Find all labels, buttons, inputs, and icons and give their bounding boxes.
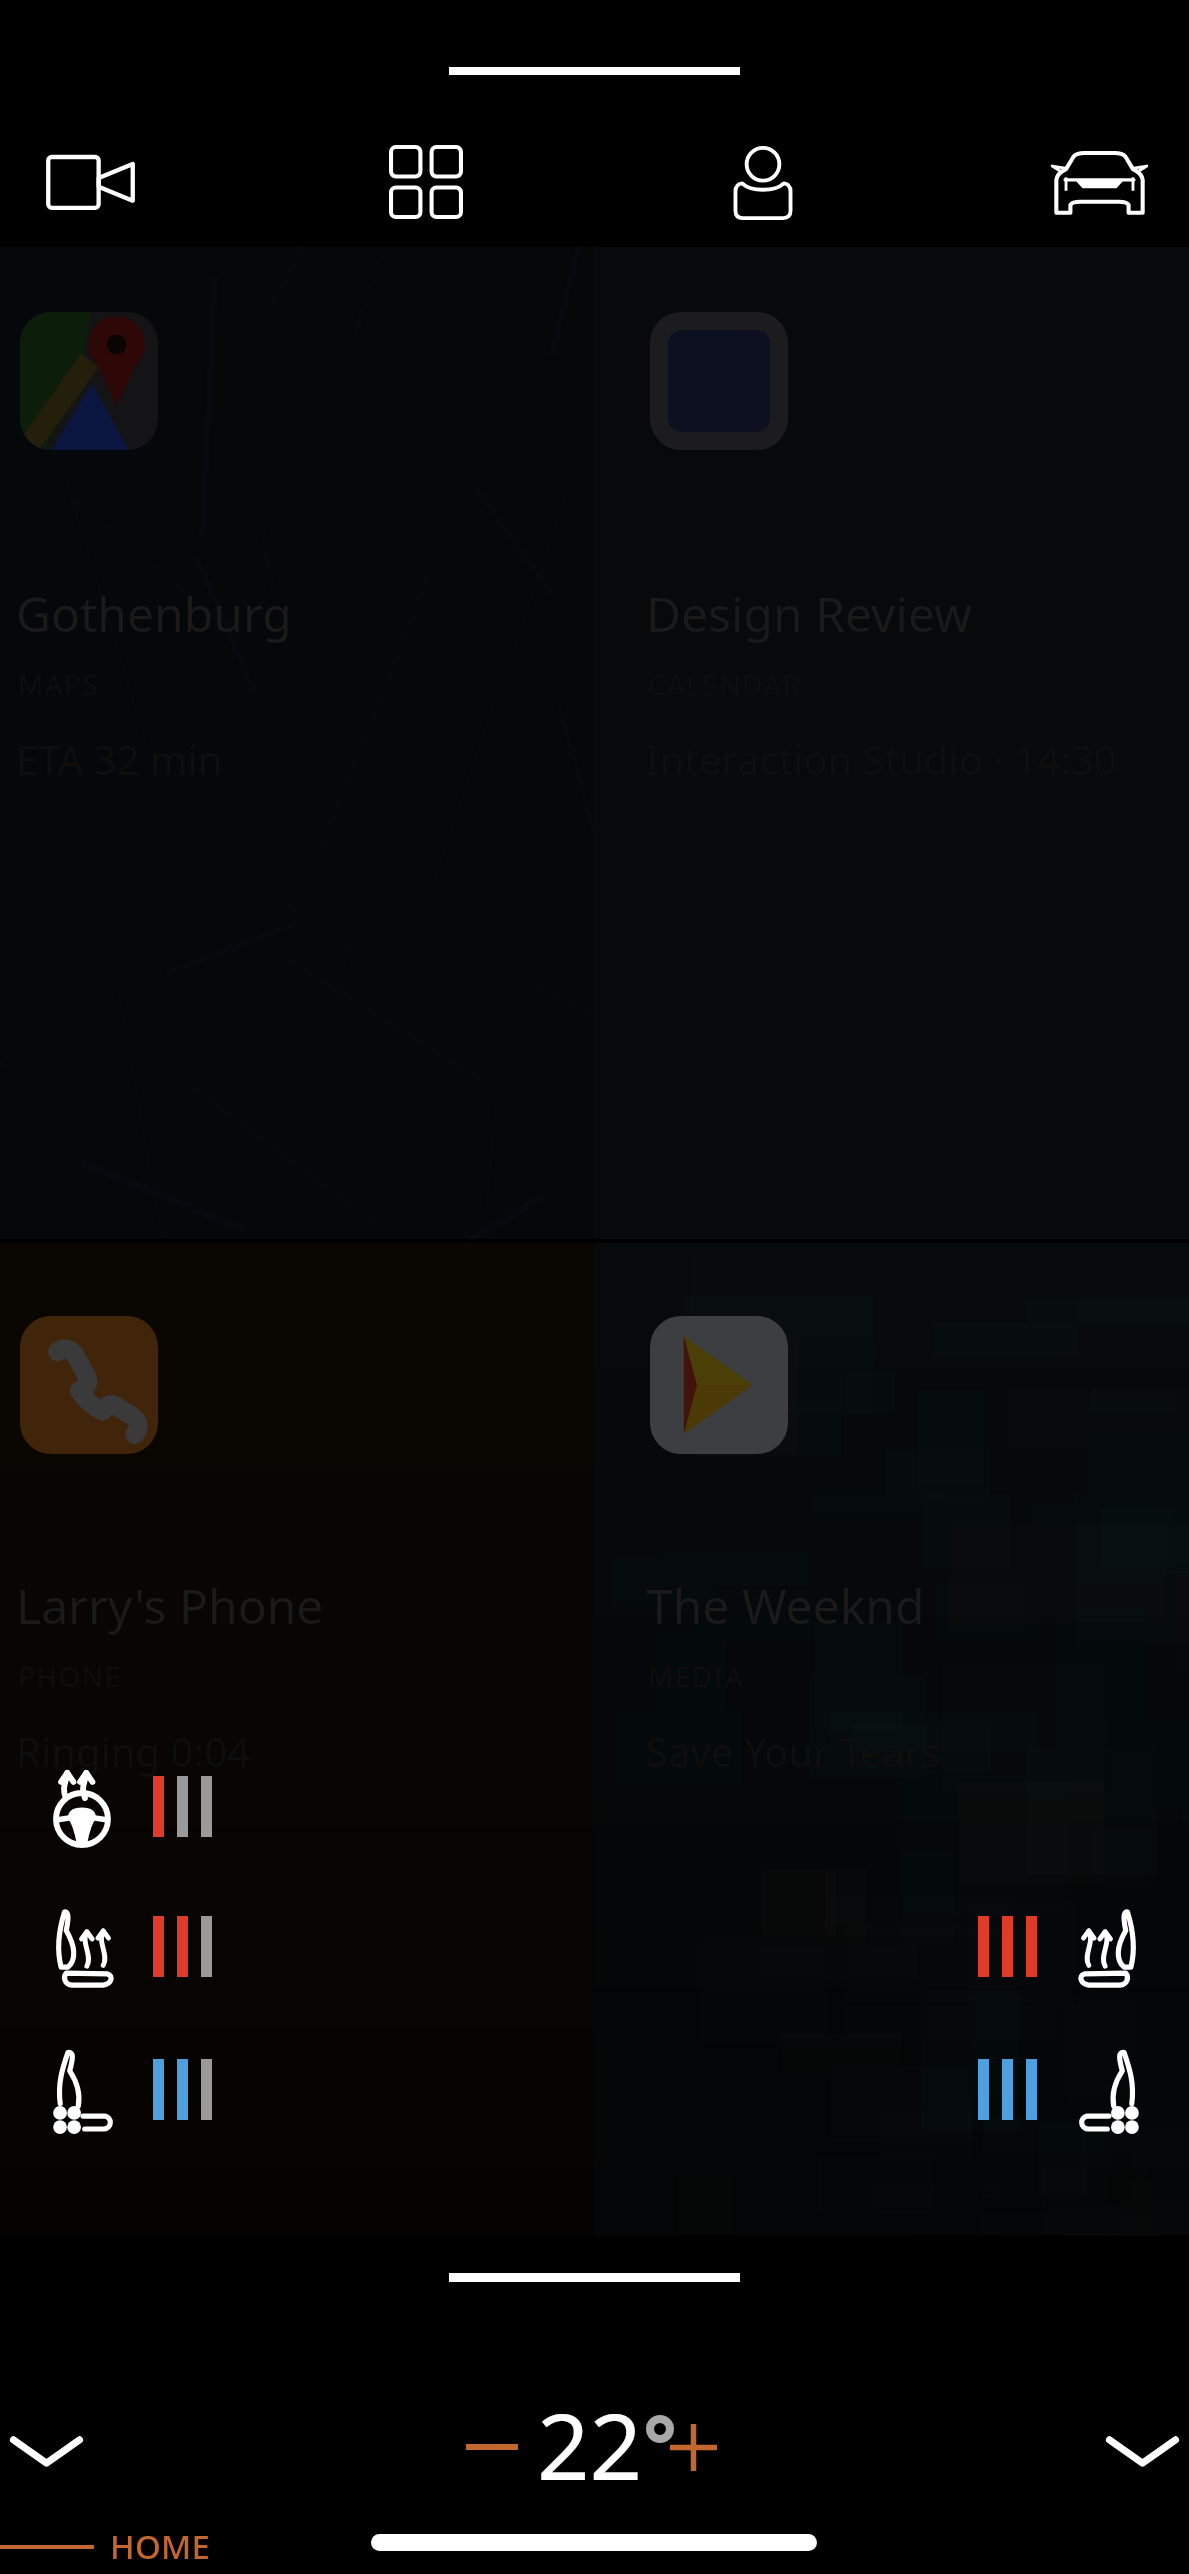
button[interactable]: Driver seat heater (30, 1888, 225, 2004)
staticText: Larry's Phone (16, 1573, 324, 1638)
button[interactable] (0, 247, 594, 1239)
staticText: PHONE (18, 1657, 122, 1695)
staticText: MEDIA (648, 1657, 744, 1695)
staticText: HOME (110, 2524, 211, 2569)
staticText: 22 (537, 2382, 643, 2507)
button[interactable]: Driver climate (0, 2381, 116, 2521)
button[interactable]: Increase temperature (638, 2392, 748, 2502)
button[interactable]: Steering wheel heater (30, 1748, 225, 1864)
button[interactable]: All apps (356, 112, 496, 252)
staticText: The Weeknd (646, 1573, 925, 1638)
button[interactable]: Passenger climate (1072, 2381, 1189, 2521)
button[interactable]: Profile (693, 113, 833, 253)
button[interactable]: Driver seat ventilation (30, 2031, 225, 2147)
staticText: Gothenburg (16, 581, 292, 646)
button[interactable] (0, 1243, 594, 2235)
button[interactable]: Passenger seat heater (966, 1888, 1161, 2004)
button[interactable]: Decrease temperature (437, 2392, 547, 2502)
staticText: Design Review (646, 581, 972, 646)
button[interactable]: HOME (110, 2524, 211, 2569)
button[interactable]: Vehicle (1029, 113, 1169, 253)
staticText: Ringing 0:04 (16, 1724, 250, 1778)
button[interactable]: Video call (20, 112, 160, 252)
button[interactable] (594, 1243, 1189, 2235)
button[interactable] (594, 247, 1189, 1239)
button[interactable]: Passenger seat ventilation (966, 2031, 1161, 2147)
